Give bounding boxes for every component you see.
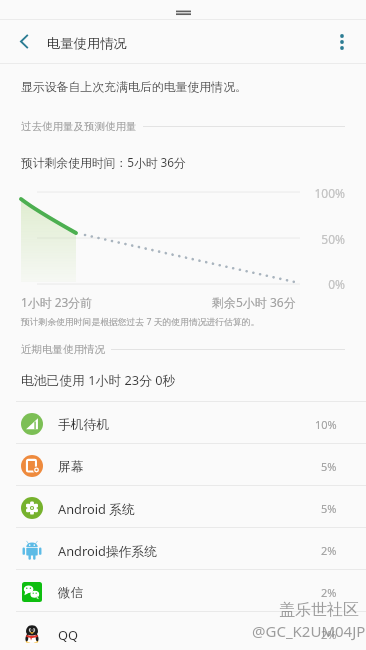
button[interactable]: QQ [0, 612, 366, 650]
staticText: 2% [321, 543, 337, 558]
staticText: 100% [0, 185, 345, 201]
staticText: 10% [315, 417, 337, 432]
staticText: 屏幕 [58, 459, 84, 475]
staticText: Android操作系统 [58, 542, 158, 559]
staticText: 剩余5小时 36分 [212, 294, 296, 310]
button[interactable]: More options [314, 20, 366, 63]
staticText: 近期电量使用情况 [21, 343, 105, 356]
staticText: 5% [321, 459, 337, 474]
staticText: 手机待机 [58, 417, 110, 433]
button[interactable]: 屏幕 [0, 444, 366, 485]
staticText: 0% [0, 276, 345, 292]
staticText: 预计剩余使用时间是根据您过去 7 天的使用情况进行估算的。 [21, 316, 260, 328]
staticText: 过去使用量及预测使用量 [21, 120, 137, 133]
staticText: 显示设备自上次充满电后的电量使用情况。 [21, 80, 247, 95]
staticText: 1小时 23分前 [21, 294, 93, 310]
staticText: 电池已使用 1小时 23分 0秒 [21, 371, 176, 388]
staticText: 盖乐世社区 [279, 600, 359, 620]
staticText: 微信 [58, 585, 84, 601]
staticText: Android 系统 [58, 500, 135, 517]
staticText: 2% [321, 585, 337, 600]
staticText: 5% [321, 501, 337, 516]
button[interactable]: Android操作系统 [0, 528, 366, 569]
staticText: 电量使用情况 [47, 35, 127, 52]
staticText: @GC_K2UM04JP [252, 621, 366, 641]
button[interactable]: Android 系统 [0, 486, 366, 527]
staticText: QQ [58, 626, 78, 643]
staticText: 2% [321, 627, 337, 642]
button[interactable]: 手机待机 [0, 402, 366, 443]
button[interactable]: Back [0, 20, 48, 63]
staticText: 预计剩余使用时间：5小时 36分 [21, 154, 186, 170]
staticText: 50% [0, 231, 345, 247]
button[interactable]: 微信 [0, 570, 366, 611]
